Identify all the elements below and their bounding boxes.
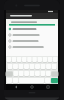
button[interactable]: Home <box>26 84 38 90</box>
button[interactable]: Keyboard <box>6 56 58 84</box>
button[interactable] <box>6 19 58 26</box>
button[interactable]: Option <box>6 44 58 50</box>
button[interactable]: Option <box>6 32 58 38</box>
button[interactable]: Selected option <box>6 26 58 32</box>
button[interactable]: Option <box>6 38 58 44</box>
button[interactable]: Back <box>10 84 22 90</box>
button[interactable] <box>6 13 58 19</box>
button[interactable]: Recents <box>42 84 54 90</box>
